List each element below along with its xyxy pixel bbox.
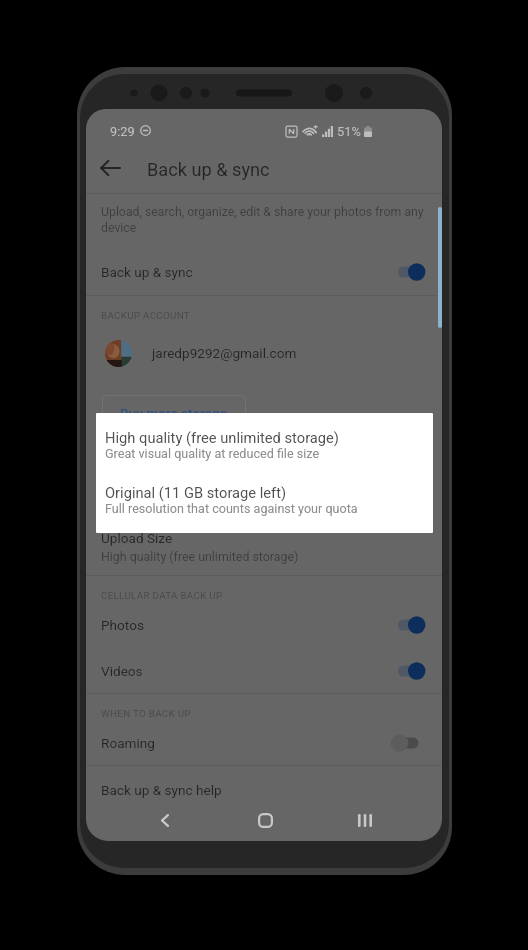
button[interactable]: High quality (free unlimited storage) — [96, 424, 433, 466]
staticText: Great visual quality at reduced file siz… — [105, 446, 320, 461]
button[interactable]: Navigate up — [89, 147, 131, 189]
staticText: CELLULAR DATA BACK UP — [101, 590, 223, 601]
staticText: High quality (free unlimited storage) — [105, 429, 339, 446]
staticText: High quality (free unlimited storage) — [101, 549, 299, 564]
staticText: Upload Size — [101, 530, 173, 546]
button[interactable]: Recent apps — [341, 796, 389, 841]
button[interactable]: Upload Size — [86, 525, 442, 569]
button[interactable]: Buy more storage — [102, 395, 246, 431]
button[interactable]: Home — [241, 796, 289, 841]
staticText: Back up & sync help — [101, 782, 222, 798]
staticText: Photos — [101, 617, 144, 633]
staticText: Back up & sync — [147, 159, 270, 180]
staticText: Back up & sync — [101, 264, 193, 280]
button[interactable]: jaredp9292@gmail.com — [86, 332, 442, 374]
staticText: Buy more storage — [120, 405, 228, 421]
button[interactable]: Roaming — [86, 720, 442, 766]
staticText: Full resolution that counts against your… — [105, 501, 358, 516]
button[interactable]: Back up & sync help — [86, 767, 442, 813]
button[interactable]: Original (11 GB storage left) — [96, 479, 433, 521]
button[interactable]: Back up & sync — [86, 249, 442, 295]
staticText: BACKUP ACCOUNT — [101, 310, 191, 321]
staticText: Original (11 GB storage left) — [105, 484, 287, 501]
staticText: WHEN TO BACK UP — [101, 708, 191, 719]
staticText: jaredp9292@gmail.com — [152, 345, 297, 361]
staticText: Upload, search, organize, edit & share y… — [101, 205, 427, 235]
staticText: Roaming — [101, 735, 155, 751]
staticText: Videos — [101, 663, 143, 679]
button[interactable]: Photos — [86, 602, 442, 648]
button[interactable]: Back — [141, 796, 189, 841]
staticText: 9:29 — [110, 124, 135, 139]
staticText: 51% — [337, 124, 361, 139]
button[interactable]: Videos — [86, 648, 442, 694]
